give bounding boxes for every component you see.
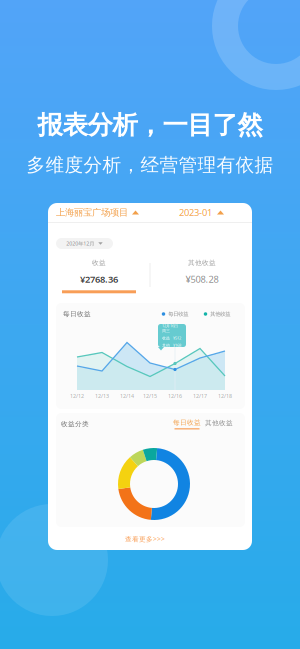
staticText: 多维度分析，经营管理有依据 bbox=[26, 153, 273, 176]
staticText: 收益 ¥512 bbox=[162, 335, 181, 341]
staticText: ¥2768.36 bbox=[80, 273, 118, 285]
staticText: 12/12 bbox=[70, 392, 84, 400]
staticText: 其他 ¥168 bbox=[162, 343, 181, 348]
button[interactable]: 上海丽宝广场项目 bbox=[56, 203, 150, 222]
button[interactable]: 其他收益 bbox=[154, 259, 250, 293]
staticText: 其他收益 bbox=[205, 419, 233, 427]
button[interactable]: 其他收益 bbox=[205, 419, 233, 427]
staticText: 收益 bbox=[92, 259, 106, 267]
button[interactable]: 2023-01 bbox=[179, 203, 225, 222]
staticText: 12/13 bbox=[95, 392, 109, 400]
staticText: 每日收益 bbox=[173, 419, 201, 427]
staticText: 其他收益 bbox=[188, 259, 216, 267]
staticText: 12/14 bbox=[120, 392, 134, 400]
button[interactable]: 查看更多>>> bbox=[115, 533, 175, 545]
staticText: 12/17 bbox=[193, 392, 207, 400]
staticText: 报表分析，一目了然 bbox=[37, 109, 262, 140]
staticText: 每日收益 bbox=[168, 311, 188, 317]
staticText: ¥508.28 bbox=[185, 273, 218, 285]
button[interactable]: 2020年12月 bbox=[56, 238, 113, 249]
staticText: 收益分类 bbox=[61, 420, 89, 428]
button[interactable]: 每日收益 bbox=[173, 419, 201, 429]
staticText: 2023-01 bbox=[179, 206, 212, 219]
staticText: 其他收益 bbox=[210, 311, 230, 317]
staticText: 12/15 bbox=[143, 392, 157, 400]
staticText: 2020年12月 bbox=[66, 240, 94, 247]
staticText: 上海丽宝广场项目 bbox=[56, 207, 128, 218]
button[interactable]: 收益 bbox=[51, 259, 147, 293]
staticText: 每日收益 bbox=[63, 310, 91, 318]
staticText: 12/16 bbox=[168, 392, 182, 400]
staticText: 12月16日 周三 bbox=[162, 323, 178, 333]
staticText: 查看更多>>> bbox=[125, 535, 165, 543]
staticText: 12/18 bbox=[218, 392, 232, 400]
